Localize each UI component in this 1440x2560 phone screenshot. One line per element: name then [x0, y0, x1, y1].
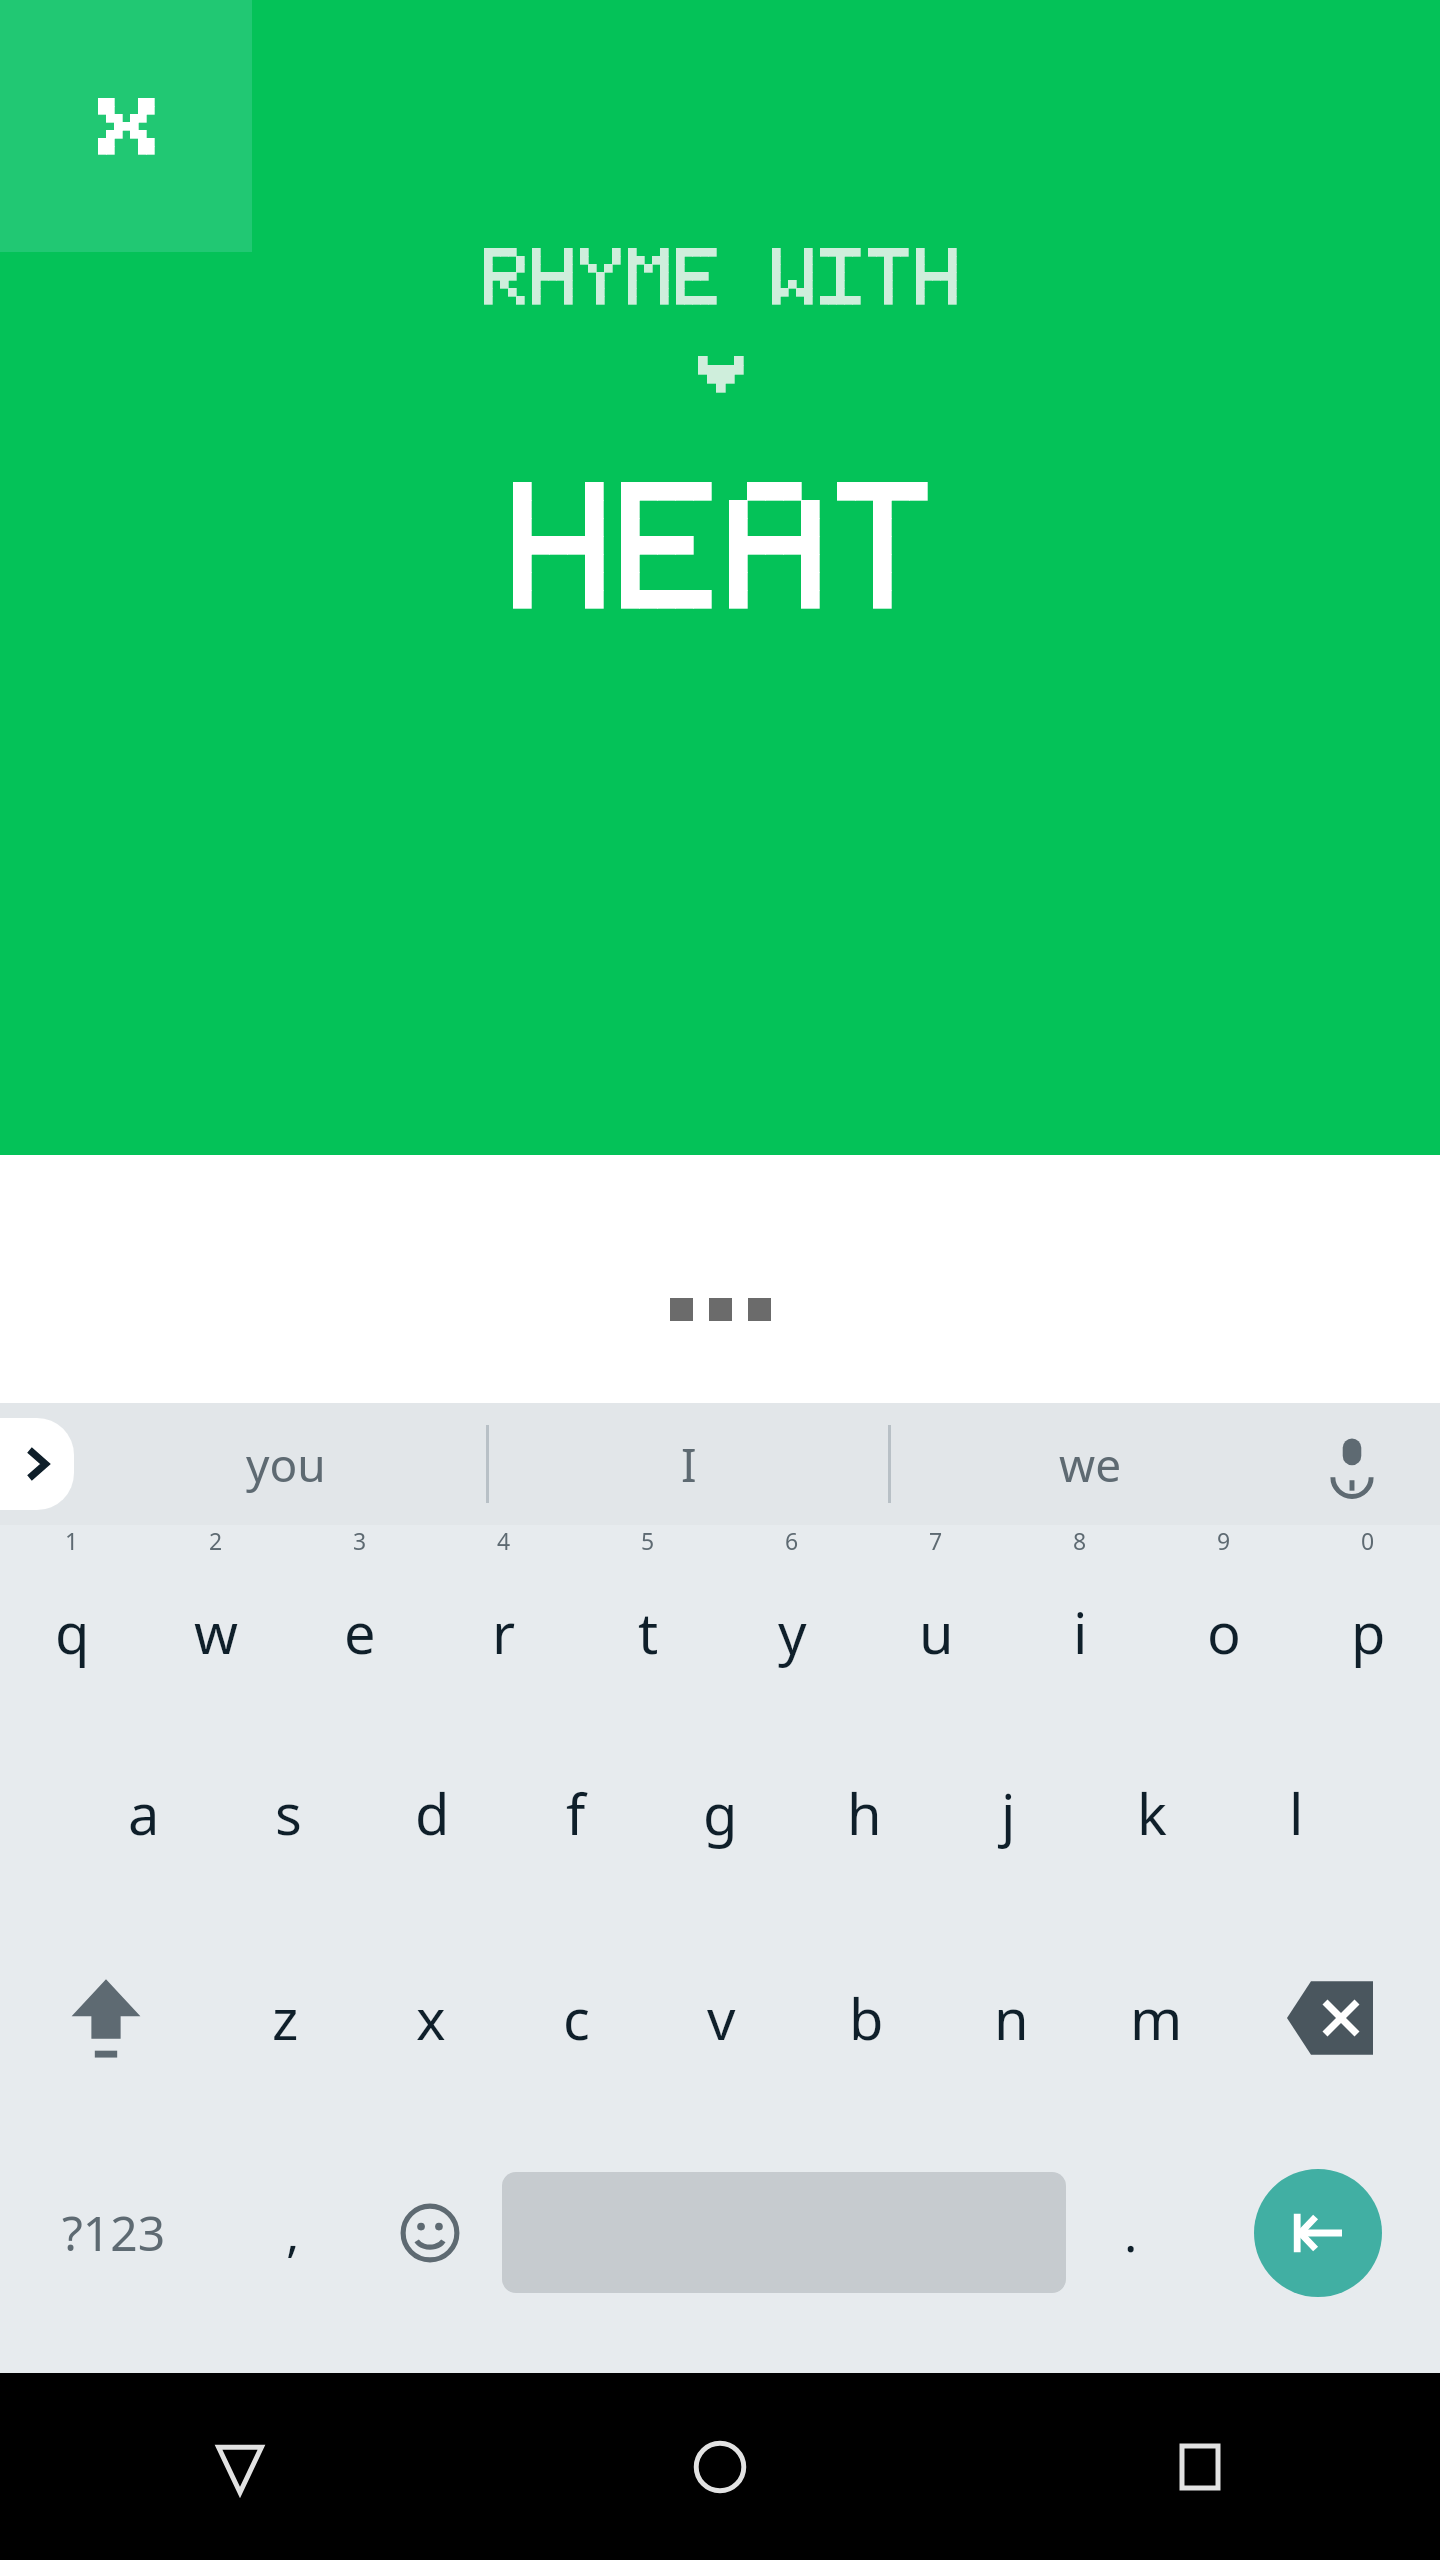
button[interactable]: 8 — [1008, 1525, 1152, 1710]
staticText: h — [847, 1775, 882, 1851]
staticText: u — [919, 1594, 954, 1670]
staticText: f — [566, 1775, 586, 1851]
button[interactable]: 6 — [720, 1525, 864, 1710]
staticText: x — [416, 1980, 446, 2056]
staticText: we — [1059, 1433, 1122, 1496]
button[interactable]: 5 — [576, 1525, 720, 1710]
button[interactable]: 1 — [0, 1525, 144, 1710]
button[interactable]: d — [360, 1710, 504, 1915]
staticText: , — [286, 2199, 300, 2267]
staticText: 1 — [65, 1525, 79, 1556]
staticText: g — [703, 1775, 738, 1851]
staticText: 2 — [209, 1525, 223, 1556]
staticText: 3 — [353, 1525, 367, 1556]
button[interactable]: n — [939, 1915, 1084, 2120]
button[interactable]: v — [649, 1915, 794, 2120]
staticText: you — [246, 1433, 326, 1496]
staticText: . — [1124, 2199, 1138, 2267]
button[interactable]: Home — [480, 2373, 960, 2560]
button[interactable]: Voice input — [1304, 1416, 1400, 1512]
staticText: 4 — [497, 1525, 511, 1556]
button[interactable]: g — [648, 1710, 792, 1915]
button[interactable]: z — [212, 1915, 358, 2120]
staticText: t — [638, 1594, 659, 1670]
staticText: q — [55, 1594, 90, 1670]
staticText: 0 — [1361, 1525, 1375, 1556]
button[interactable]: Shift — [0, 1915, 212, 2120]
button[interactable]: 4 — [432, 1525, 576, 1710]
button[interactable]: Emoji — [357, 2120, 502, 2345]
staticText: 9 — [1217, 1525, 1231, 1556]
button[interactable]: Recent apps — [960, 2373, 1440, 2560]
button[interactable]: l — [1224, 1710, 1368, 1915]
button[interactable]: . — [1066, 2120, 1196, 2345]
staticText: m — [1130, 1980, 1183, 2056]
staticText: n — [994, 1980, 1029, 2056]
button[interactable]: Enter — [1254, 2169, 1382, 2297]
button[interactable]: f — [504, 1710, 648, 1915]
staticText: r — [492, 1594, 516, 1670]
staticText: b — [849, 1980, 884, 2056]
staticText: 5 — [641, 1525, 655, 1556]
staticText: e — [344, 1594, 376, 1670]
button[interactable]: k — [1080, 1710, 1224, 1915]
button[interactable]: h — [792, 1710, 936, 1915]
staticText: k — [1137, 1775, 1167, 1851]
staticText: v — [707, 1980, 736, 2056]
button[interactable]: we — [891, 1403, 1290, 1525]
staticText: s — [275, 1775, 302, 1851]
staticText: p — [1351, 1594, 1386, 1670]
button[interactable]: ?123 — [0, 2120, 228, 2345]
button[interactable]: 2 — [144, 1525, 288, 1710]
button[interactable]: x — [358, 1915, 504, 2120]
staticText: I — [681, 1433, 697, 1496]
staticText: l — [1289, 1775, 1304, 1851]
button[interactable]: a — [72, 1710, 216, 1915]
staticText: i — [1073, 1594, 1088, 1670]
staticText: o — [1207, 1594, 1241, 1670]
staticText: 6 — [785, 1525, 799, 1556]
button[interactable]: 0 — [1296, 1525, 1440, 1710]
staticText: a — [128, 1775, 160, 1851]
button[interactable]: b — [794, 1915, 939, 2120]
staticText: w — [194, 1594, 239, 1670]
staticText: y — [778, 1594, 807, 1670]
button[interactable]: you — [86, 1403, 486, 1525]
staticText: j — [1001, 1775, 1016, 1851]
staticText: ?123 — [62, 2200, 166, 2265]
staticText: 7 — [929, 1525, 943, 1556]
button[interactable]: c — [504, 1915, 649, 2120]
button[interactable]: m — [1084, 1915, 1229, 2120]
button[interactable]: Backspace — [1229, 1915, 1440, 2120]
staticText: d — [415, 1775, 450, 1851]
button[interactable]: 3 — [288, 1525, 432, 1710]
staticText: c — [563, 1980, 590, 2056]
button[interactable]: More suggestions — [0, 1418, 74, 1510]
button[interactable]: , — [228, 2120, 357, 2345]
button[interactable]: 7 — [864, 1525, 1008, 1710]
staticText: 8 — [1073, 1525, 1087, 1556]
button[interactable]: s — [216, 1710, 360, 1915]
staticText: z — [272, 1980, 299, 2056]
button[interactable]: Back — [0, 2373, 480, 2560]
button[interactable]: I — [489, 1403, 888, 1525]
button[interactable]: Close — [0, 0, 252, 252]
button[interactable]: j — [936, 1710, 1080, 1915]
button[interactable]: 9 — [1152, 1525, 1296, 1710]
